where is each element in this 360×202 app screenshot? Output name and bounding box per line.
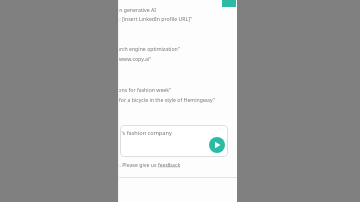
staticText: on generative AI	[116, 6, 157, 13]
staticText: www.copy.ai"	[119, 55, 152, 62]
button[interactable]: ions for fashion week"	[118, 86, 237, 103]
staticText: ions for fashion week"	[117, 86, 172, 93]
staticText: o: [insert LinkedIn profile URL]"	[116, 15, 193, 22]
button[interactable]: s. Please give us	[118, 161, 237, 168]
button[interactable]: on generative AI	[118, 6, 237, 22]
staticText: s. Please give us	[117, 161, 158, 168]
button[interactable]: Send	[209, 137, 225, 153]
staticText: n's fashion company	[120, 129, 172, 137]
button[interactable]: arch engine optimization"	[118, 45, 237, 62]
staticText: feedback	[158, 161, 181, 168]
staticText: for a bicycle in the style of Hemingway"	[119, 96, 215, 103]
staticText: arch engine optimization"	[117, 45, 180, 52]
button[interactable]: n's fashion company	[120, 125, 228, 157]
